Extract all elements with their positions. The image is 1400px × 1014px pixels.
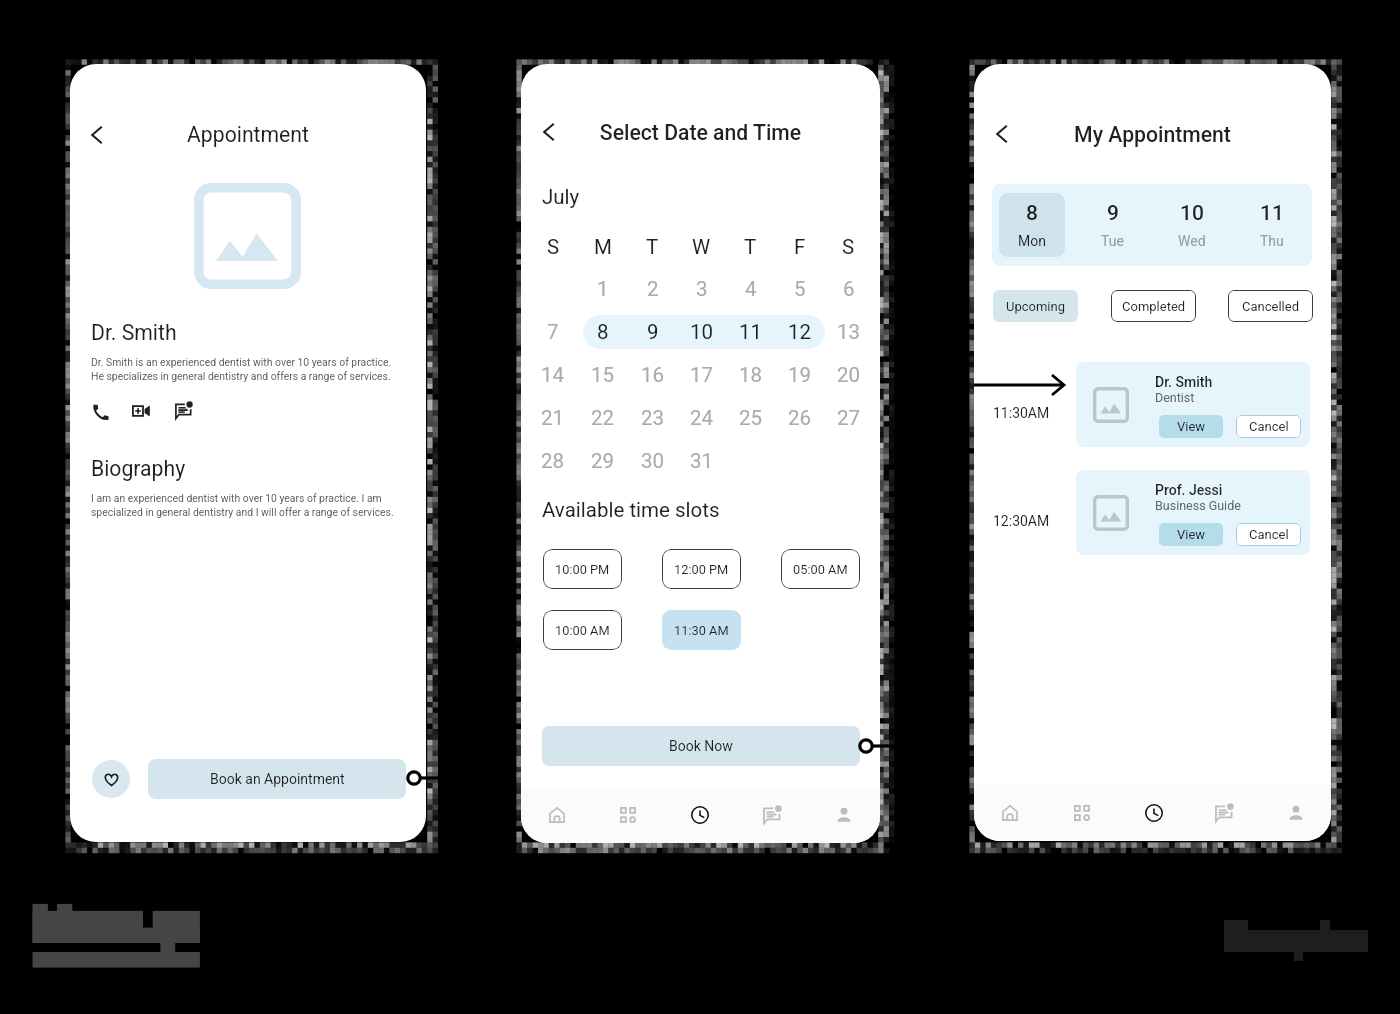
button[interactable]: Messages <box>736 787 808 843</box>
button[interactable]: Profile <box>808 787 880 843</box>
button[interactable]: Schedule <box>1118 785 1189 841</box>
button[interactable]: 24 <box>677 405 726 431</box>
staticText: Tue <box>1101 233 1124 249</box>
button[interactable]: 25 <box>726 405 775 431</box>
button[interactable]: 11:30 AM <box>662 610 741 650</box>
button[interactable]: 28 <box>528 448 578 474</box>
button[interactable]: 2 <box>628 276 677 302</box>
staticText: 2 <box>647 277 659 301</box>
button[interactable]: 31 <box>677 448 726 474</box>
button[interactable]: 18 <box>726 362 775 388</box>
button[interactable]: Book Now <box>542 726 860 766</box>
button[interactable]: Back <box>532 115 566 149</box>
staticText: 10 <box>1180 201 1204 226</box>
button[interactable]: Back <box>985 117 1019 151</box>
staticText: Book Now <box>669 738 733 754</box>
staticText: Dr. Smith <box>1155 374 1213 390</box>
button[interactable]: Messages <box>1189 785 1260 841</box>
staticText: 22 <box>591 406 615 430</box>
button[interactable]: Completed <box>1111 290 1196 322</box>
button[interactable]: Schedule <box>664 787 736 843</box>
button[interactable]: Video call <box>128 398 154 424</box>
button[interactable]: Book an Appointment <box>148 759 406 799</box>
button[interactable]: Dr. Smith <box>1076 362 1310 447</box>
button[interactable]: 10:00 AM <box>543 610 622 650</box>
button[interactable]: 8 <box>999 193 1065 257</box>
button[interactable]: Call <box>87 398 113 424</box>
button[interactable]: 17 <box>677 362 726 388</box>
staticText: 1 <box>597 277 609 301</box>
button[interactable]: View <box>1159 415 1223 438</box>
button[interactable]: 05:00 AM <box>781 549 860 589</box>
staticText: 05:00 AM <box>793 562 848 577</box>
button[interactable]: Back <box>80 118 114 152</box>
button[interactable]: 23 <box>628 405 677 431</box>
button[interactable]: 14 <box>528 362 578 388</box>
button[interactable]: 11 <box>1239 193 1305 257</box>
button[interactable]: 22 <box>578 405 628 431</box>
button[interactable]: 19 <box>775 362 824 388</box>
staticText: 7 <box>547 320 559 344</box>
staticText: 15 <box>591 363 615 387</box>
staticText: 5 <box>794 277 806 301</box>
staticText: 11:30 AM <box>674 623 729 638</box>
button[interactable]: Prof. Jessi <box>1076 470 1310 555</box>
button[interactable]: Cancel <box>1236 415 1301 438</box>
button[interactable]: 15 <box>578 362 628 388</box>
staticText: 10:00 AM <box>555 623 610 638</box>
button[interactable]: 29 <box>578 448 628 474</box>
button[interactable]: 21 <box>528 405 578 431</box>
button[interactable]: 12:00 PM <box>662 549 741 589</box>
button[interactable]: Profile <box>1260 785 1331 841</box>
staticText: 11 <box>739 320 763 344</box>
staticText: Thu <box>1260 233 1284 249</box>
staticText: 8 <box>1026 201 1038 226</box>
button[interactable]: 4 <box>726 276 775 302</box>
button[interactable]: 10:00 PM <box>543 549 622 589</box>
staticText: 26 <box>788 406 812 430</box>
button[interactable]: 8 <box>578 319 628 345</box>
staticText: 30 <box>641 449 665 473</box>
button[interactable]: 1 <box>578 276 628 302</box>
button[interactable]: Favourite <box>92 760 130 798</box>
button[interactable]: Home <box>521 787 592 843</box>
button[interactable]: 11 <box>726 319 775 345</box>
button[interactable]: 3 <box>677 276 726 302</box>
staticText: 13 <box>837 320 861 344</box>
button[interactable]: 9 <box>1079 193 1145 257</box>
staticText: 12:00 PM <box>674 562 729 577</box>
button[interactable]: Home <box>974 785 1046 841</box>
button[interactable]: 9 <box>628 319 677 345</box>
staticText: 21 <box>541 406 565 430</box>
staticText: 27 <box>837 406 861 430</box>
staticText: 12 <box>788 320 812 344</box>
button[interactable]: 5 <box>775 276 824 302</box>
button[interactable]: Message <box>171 398 197 424</box>
button[interactable]: 26 <box>775 405 824 431</box>
button[interactable]: 12 <box>775 319 824 345</box>
button[interactable]: 10 <box>1159 193 1225 257</box>
staticText: 16 <box>641 363 665 387</box>
button[interactable]: Dashboard <box>1046 785 1118 841</box>
button[interactable]: 10 <box>677 319 726 345</box>
staticText: Dr. Smith is an experienced dentist with… <box>91 356 392 383</box>
button[interactable]: Cancel <box>1236 523 1301 546</box>
button[interactable]: 6 <box>824 276 873 302</box>
staticText: Available time slots <box>542 498 720 522</box>
button[interactable]: Cancelled <box>1228 290 1313 322</box>
button[interactable]: 16 <box>628 362 677 388</box>
button[interactable]: Dashboard <box>592 787 664 843</box>
staticText: July <box>542 185 580 209</box>
button[interactable]: 20 <box>824 362 873 388</box>
button[interactable]: 13 <box>824 319 873 345</box>
button[interactable]: Upcoming <box>993 290 1078 322</box>
button[interactable]: 30 <box>628 448 677 474</box>
button[interactable]: 27 <box>824 405 873 431</box>
button[interactable]: View <box>1159 523 1223 546</box>
button[interactable]: 7 <box>528 319 578 345</box>
staticText: 19 <box>788 363 812 387</box>
